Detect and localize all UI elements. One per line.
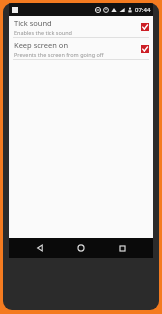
- staticText: Keep screen on: [14, 40, 69, 50]
- button[interactable]: Recent apps: [112, 238, 132, 258]
- staticText: 07:44: [135, 6, 151, 14]
- button[interactable]: Tick sound: [9, 16, 153, 37]
- button[interactable]: Toggle setting: [140, 22, 149, 31]
- button[interactable]: Home: [71, 238, 91, 258]
- button[interactable]: Back: [30, 238, 50, 258]
- staticText: Tick sound: [14, 18, 52, 28]
- staticText: Prevents the screen from going off: [14, 51, 104, 58]
- button[interactable]: Toggle setting: [140, 44, 149, 53]
- staticText: Enables the tick sound: [14, 29, 72, 36]
- button[interactable]: Keep screen on: [9, 38, 153, 59]
